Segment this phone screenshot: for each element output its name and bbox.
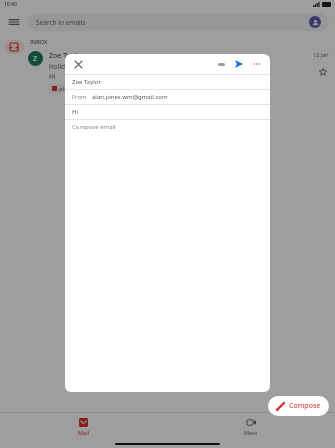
staticText: alan.jones.wm@gmail.com (92, 93, 168, 101)
button[interactable]: Inbox (4, 40, 24, 54)
button[interactable]: Zoe Taylor (65, 75, 270, 89)
staticText: 12 Jan (313, 51, 329, 58)
button[interactable]: More options (251, 58, 263, 70)
staticText: Z (33, 54, 38, 64)
staticText: Zoe Taylor (72, 78, 101, 86)
button[interactable]: From (65, 90, 270, 104)
button[interactable]: pho (49, 84, 73, 93)
staticText: INBOX (30, 38, 48, 45)
staticText: Zoe Taylor (49, 51, 84, 61)
button[interactable]: Star conversation (317, 66, 329, 78)
button[interactable]: Mail (0, 413, 167, 440)
button[interactable]: Meet (167, 413, 335, 440)
staticText: 10:40 (4, 1, 17, 8)
button[interactable]: Search in emails (28, 13, 329, 31)
button[interactable]: Compose email (65, 120, 270, 134)
staticText: Meet (244, 429, 258, 436)
staticText: Holiday pictures (49, 62, 99, 71)
button[interactable]: Z (28, 51, 335, 93)
staticText: Compose (289, 401, 321, 411)
button[interactable]: Compose (268, 396, 329, 416)
staticText: Hi (49, 72, 56, 81)
button[interactable]: Close (72, 58, 84, 70)
button[interactable]: Send (233, 58, 245, 70)
button[interactable]: Attach file (215, 58, 227, 70)
staticText: pho (59, 85, 70, 92)
staticText: Search in emails (36, 18, 86, 27)
staticText: From (72, 93, 87, 101)
staticText: Compose email (72, 123, 116, 131)
button[interactable]: Hi (65, 105, 270, 119)
staticText: Mail (78, 429, 90, 436)
staticText: Hi (72, 108, 78, 116)
button[interactable]: Open navigation menu (0, 9, 28, 35)
